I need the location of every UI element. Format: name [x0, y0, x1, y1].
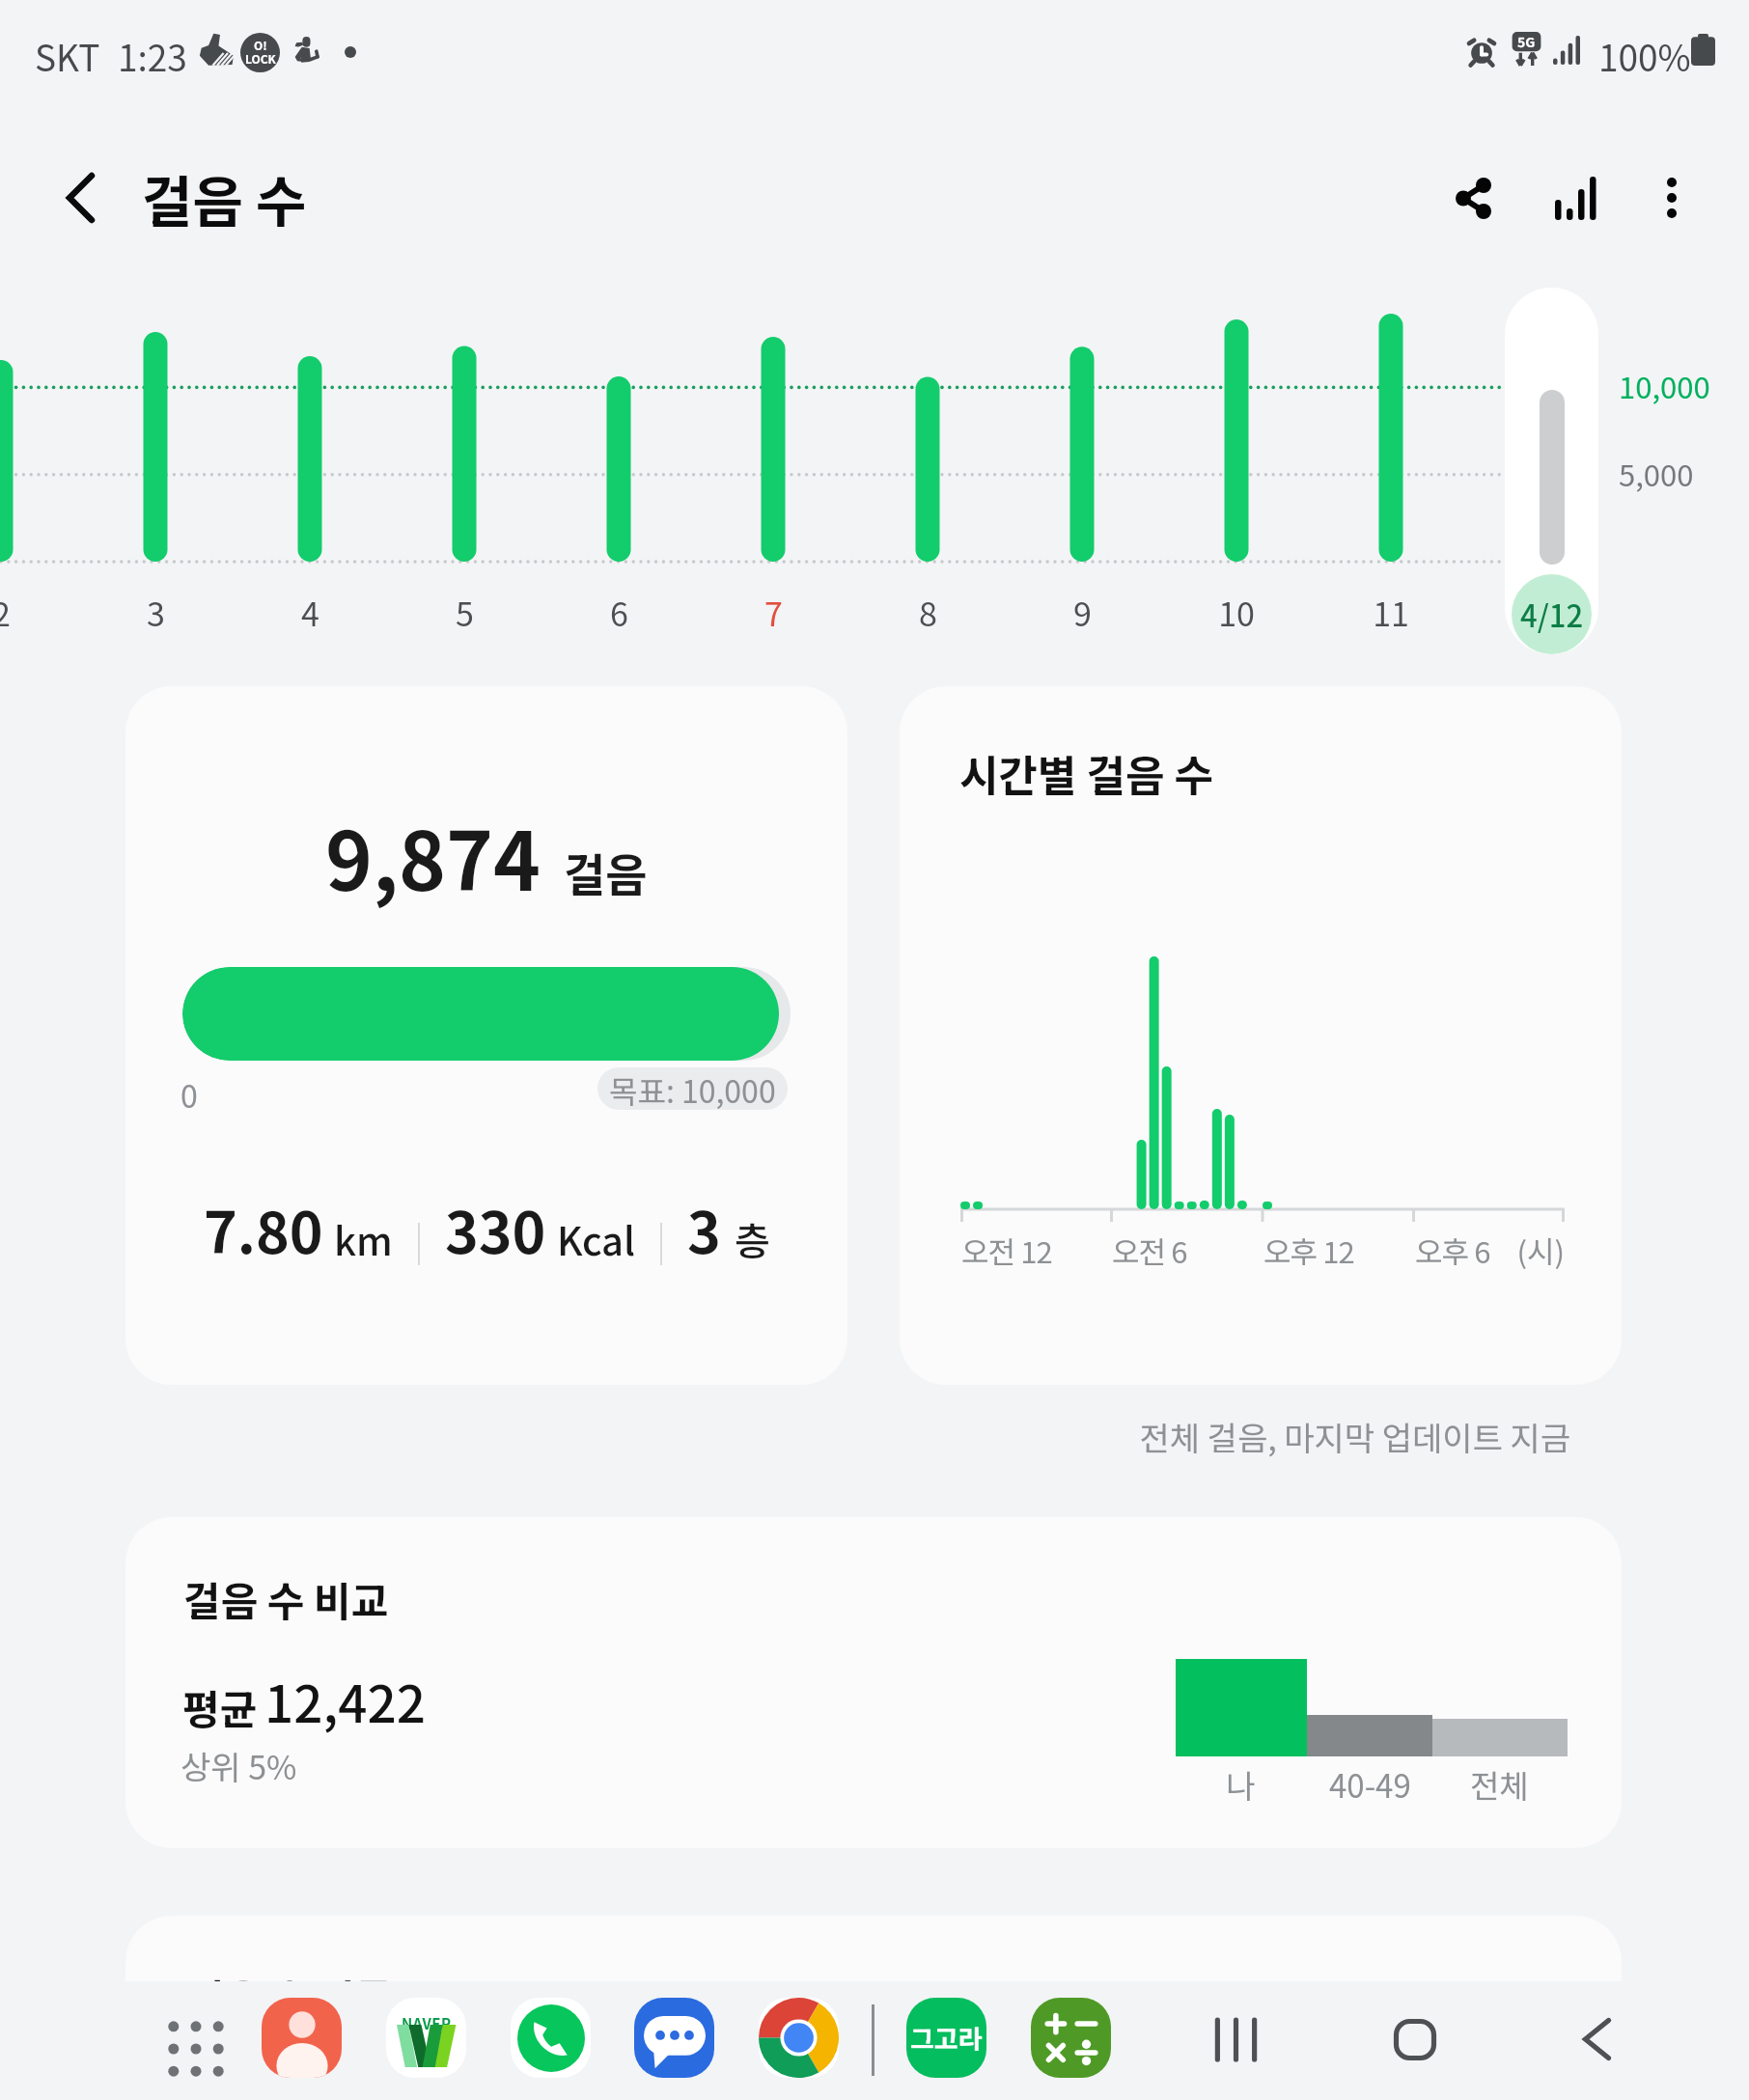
- staticText: 10,000: [1619, 364, 1710, 407]
- staticText: 층: [735, 1211, 770, 1267]
- staticText: 40-49: [1329, 1761, 1411, 1808]
- button[interactable]: More options: [1619, 130, 1725, 265]
- button[interactable]: Contacts: [262, 1998, 342, 2078]
- staticText: 3: [687, 1188, 721, 1270]
- staticText: Kcal: [557, 1211, 635, 1267]
- staticText: 4: [301, 589, 319, 636]
- staticText: 시간별 걸음 수: [959, 742, 1213, 804]
- staticText: 7.80: [204, 1188, 323, 1270]
- button[interactable]: Naver: [386, 1998, 466, 2078]
- staticText: 오후 6: [1415, 1229, 1490, 1272]
- button[interactable]: Recents: [1178, 1981, 1293, 2097]
- staticText: km: [334, 1211, 393, 1267]
- staticText: 전체 걸음, 마지막 업데이트 지금: [1088, 1413, 1570, 1460]
- staticText: 걸음: [564, 839, 648, 904]
- staticText: 6: [610, 589, 628, 636]
- staticText: 상위 5%: [180, 1742, 297, 1789]
- button[interactable]: Back: [17, 135, 143, 261]
- button[interactable]: Gogora: [906, 1998, 986, 2078]
- button[interactable]: 시간별 걸음 수: [900, 686, 1622, 1385]
- staticText: 2: [0, 589, 11, 636]
- staticText: 10: [1218, 589, 1255, 636]
- button[interactable]: Messages: [634, 1998, 714, 2078]
- staticText: 나: [1226, 1761, 1256, 1808]
- staticText: 330: [445, 1188, 546, 1270]
- staticText: 걸음 수 비교: [183, 1569, 389, 1628]
- staticText: 100%: [1598, 30, 1691, 82]
- button[interactable]: Phone: [511, 1998, 591, 2078]
- button[interactable]: Chrome: [759, 1998, 839, 2078]
- staticText: 12,422: [264, 1664, 426, 1738]
- button[interactable]: Calculator: [1031, 1998, 1111, 2078]
- button[interactable]: 9,874: [125, 686, 847, 1385]
- staticText: LOCK: [245, 50, 276, 67]
- staticText: SKT: [35, 30, 100, 82]
- staticText: 그고라: [910, 2019, 983, 2057]
- button[interactable]: Apps: [143, 1996, 249, 2100]
- staticText: 4/12: [1520, 593, 1584, 636]
- staticText: 평균: [182, 1677, 258, 1736]
- staticText: 오전 12: [961, 1229, 1052, 1272]
- staticText: 5: [456, 589, 474, 636]
- button[interactable]: Trends: [1517, 130, 1633, 265]
- staticText: 걸음 수: [142, 158, 307, 238]
- staticText: 9: [1073, 589, 1092, 636]
- staticText: 오전 6: [1112, 1229, 1187, 1272]
- button[interactable]: Back: [1539, 1981, 1654, 2097]
- button[interactable]: Share: [1415, 130, 1531, 265]
- staticText: 오후 12: [1263, 1229, 1354, 1272]
- staticText: 9,874: [325, 798, 541, 914]
- staticText: 11: [1373, 589, 1409, 636]
- staticText: 5,000: [1619, 452, 1694, 495]
- button[interactable]: 걸음 수 비교: [125, 1517, 1622, 1848]
- staticText: 0: [180, 1072, 198, 1117]
- staticText: 3: [147, 589, 165, 636]
- button[interactable]: Date selector: [1505, 288, 1598, 654]
- button[interactable]: Home: [1357, 1981, 1473, 2097]
- staticText: 5G: [1517, 32, 1536, 51]
- staticText: 1:23: [118, 30, 187, 82]
- staticText: NAVER: [402, 2013, 452, 2034]
- staticText: O!: [254, 37, 267, 53]
- staticText: 목표: 10,000: [609, 1067, 776, 1110]
- staticText: (시): [1482, 1229, 1565, 1272]
- staticText: 8: [919, 589, 937, 636]
- staticText: 전체: [1470, 1761, 1529, 1808]
- staticText: 7: [764, 589, 783, 636]
